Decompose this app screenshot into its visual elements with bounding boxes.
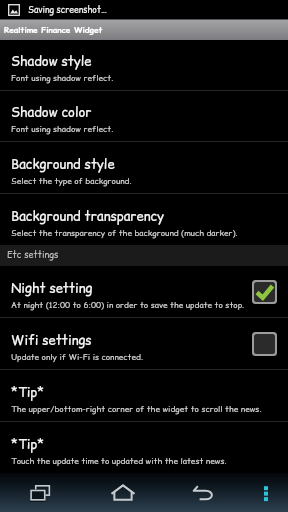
- staticText: Select the transparency of the backgroun…: [11, 227, 238, 239]
- button[interactable]: Recent apps: [0, 473, 82, 512]
- button[interactable]: Shadow style: [0, 40, 288, 90]
- staticText: Etc settings: [7, 249, 59, 262]
- staticText: Saving screenshot…: [28, 4, 107, 16]
- staticText: At night (12:00 to 6:00) in order to sav…: [11, 299, 245, 311]
- staticText: *Tip*: [11, 435, 45, 453]
- staticText: Select the type of background.: [11, 175, 132, 187]
- button[interactable]: *Tip*: [0, 422, 288, 473]
- button[interactable]: Wifi settings: [0, 318, 288, 369]
- button[interactable]: Background style: [0, 142, 288, 193]
- button[interactable]: Background transparency: [0, 194, 288, 245]
- staticText: Background transparency: [11, 207, 164, 225]
- staticText: Background style: [11, 155, 115, 173]
- button[interactable]: Home: [82, 473, 163, 512]
- staticText: Update only if Wi-Fi is connected.: [11, 351, 144, 363]
- staticText: Touch the update time to updated with th…: [11, 455, 227, 467]
- staticText: Shadow color: [11, 103, 92, 121]
- staticText: The upper/bottom-right corner of the wid…: [11, 403, 262, 415]
- button[interactable]: Shadow color: [0, 91, 288, 141]
- button[interactable]: Night setting: [0, 266, 288, 317]
- button[interactable]: Back: [163, 473, 244, 512]
- button[interactable]: *Tip*: [0, 370, 288, 421]
- staticText: Night setting: [11, 279, 93, 297]
- staticText: Font using shadow reflect.: [11, 72, 114, 84]
- staticText: Realtime Finance Widget: [4, 24, 103, 35]
- staticText: Font using shadow reflect.: [11, 123, 114, 135]
- button[interactable]: More options: [244, 473, 288, 512]
- staticText: *Tip*: [11, 383, 45, 401]
- staticText: Wifi settings: [11, 331, 92, 349]
- staticText: Shadow style: [11, 52, 92, 70]
